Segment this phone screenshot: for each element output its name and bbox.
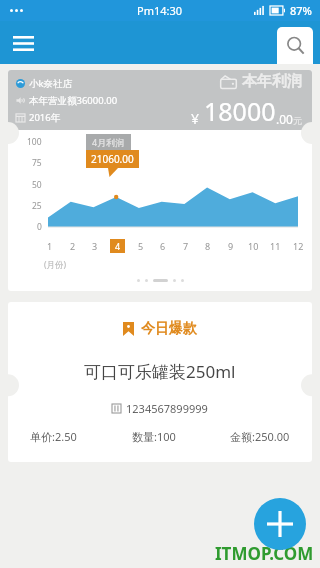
button[interactable]: 小k奈社店 xyxy=(8,70,312,291)
staticText: 数量:100 xyxy=(132,429,176,444)
staticText: 4 xyxy=(115,240,121,252)
staticText: 21060.00 xyxy=(91,152,134,166)
staticText: ¥ xyxy=(191,109,200,128)
staticText: 可口可乐罐装250ml xyxy=(84,360,236,383)
staticText: 25 xyxy=(32,200,42,212)
button[interactable]: 4 xyxy=(110,239,125,253)
staticText: 2 xyxy=(70,240,76,252)
staticText: 100 xyxy=(27,136,42,148)
staticText: 50 xyxy=(32,179,42,191)
staticText: 87% xyxy=(290,3,312,18)
staticText: 11 xyxy=(270,240,281,252)
staticText: 1234567899999 xyxy=(126,401,208,416)
staticText: 12 xyxy=(293,240,304,252)
staticText: 18000 xyxy=(204,94,276,128)
staticText: 7 xyxy=(183,240,189,252)
staticText: 今日爆款 xyxy=(141,320,197,338)
staticText: .00 xyxy=(276,111,293,127)
staticText: 金额:250.00 xyxy=(230,429,290,444)
staticText: 9 xyxy=(228,240,234,252)
staticText: 本年利润 xyxy=(242,72,302,91)
staticText: 3 xyxy=(92,240,98,252)
staticText: 元 xyxy=(293,115,302,126)
staticText: 8 xyxy=(205,240,211,252)
staticText: Pm14:30 xyxy=(137,3,183,18)
staticText: ITMOP.COM xyxy=(215,542,314,565)
staticText: 小k奈社店 xyxy=(29,77,73,90)
staticText: 4月利润 xyxy=(92,136,125,148)
staticText: (月份) xyxy=(44,259,67,271)
button[interactable]: 今日爆款 xyxy=(8,302,312,462)
staticText: 10 xyxy=(248,240,259,252)
staticText: 1 xyxy=(47,240,53,252)
staticText: 2016年 xyxy=(29,111,61,124)
staticText: 本年营业额36000.00 xyxy=(29,94,118,107)
staticText: 75 xyxy=(32,157,42,169)
staticText: 0 xyxy=(37,221,42,233)
staticText: 5 xyxy=(138,240,144,252)
staticText: 6 xyxy=(160,240,166,252)
staticText: 单价:2.50 xyxy=(30,429,77,444)
button[interactable]: Menu xyxy=(6,26,40,60)
button[interactable]: Add xyxy=(254,498,306,550)
button[interactable]: Search xyxy=(277,27,313,64)
